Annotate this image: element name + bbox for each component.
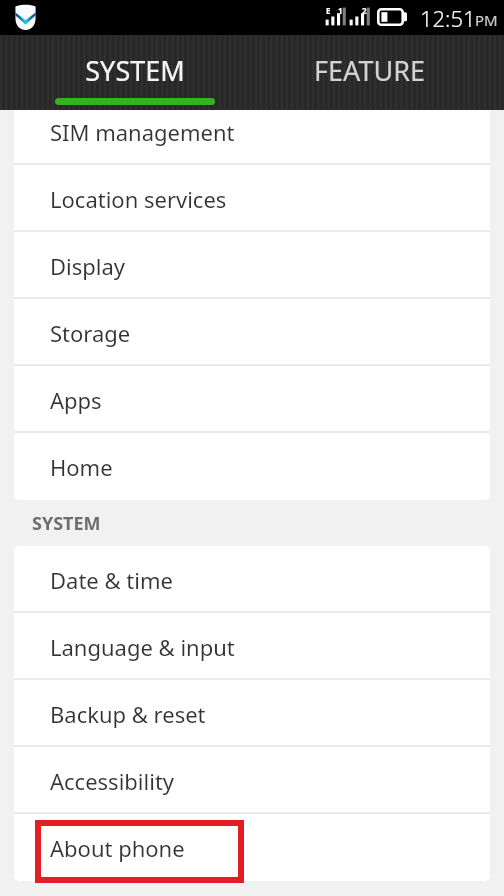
staticText: E (326, 5, 331, 16)
staticText: 12:51 (420, 3, 476, 33)
button[interactable]: Date & time (14, 546, 490, 613)
staticText: Display (50, 251, 126, 281)
staticText: Home (50, 452, 113, 482)
staticText: 1 (338, 5, 343, 16)
staticText: Date & time (50, 565, 173, 595)
button[interactable]: About phone (14, 814, 490, 881)
staticText: SYSTEM (32, 511, 101, 536)
button[interactable]: Backup & reset (14, 680, 490, 747)
button[interactable]: Apps (14, 366, 490, 433)
button[interactable]: Accessibility (14, 747, 490, 814)
staticText: Storage (50, 318, 131, 348)
button[interactable]: Display (14, 232, 490, 299)
staticText: SYSTEM (85, 52, 185, 89)
staticText: Language & input (50, 632, 235, 662)
staticText: Backup & reset (50, 699, 206, 729)
button[interactable]: Home (14, 433, 490, 500)
button[interactable]: FEATURE (252, 35, 487, 110)
button[interactable]: Language & input (14, 613, 490, 680)
button[interactable]: Location services (14, 165, 490, 232)
staticText: 2 (362, 5, 367, 16)
staticText: Location services (50, 184, 227, 214)
staticText: SIM management (50, 117, 235, 147)
staticText: FEATURE (314, 52, 425, 89)
button[interactable]: SIM management (14, 110, 490, 165)
button[interactable]: Storage (14, 299, 490, 366)
staticText: Accessibility (50, 766, 175, 796)
staticText: About phone (50, 833, 185, 863)
staticText: PM (475, 10, 498, 30)
button[interactable]: SYSTEM (17, 35, 252, 110)
staticText: Apps (50, 385, 102, 415)
